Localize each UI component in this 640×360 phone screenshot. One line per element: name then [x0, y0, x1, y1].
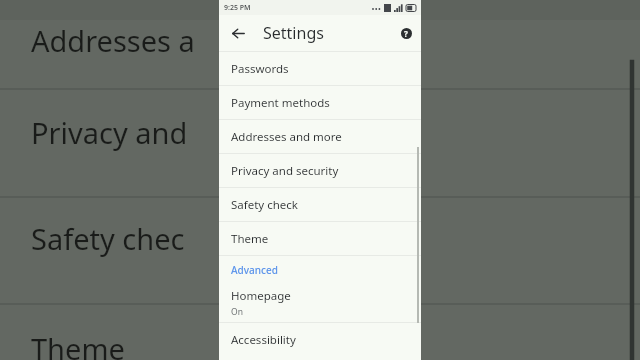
staticText: Payment methods: [231, 95, 330, 111]
staticText: On: [231, 306, 243, 318]
button[interactable]: Privacy and security: [219, 154, 421, 187]
button[interactable]: Accessibility: [219, 323, 421, 356]
button[interactable]: Help and feedback: [396, 23, 416, 43]
button[interactable]: Payment methods: [219, 86, 421, 119]
staticText: Privacy and: [31, 113, 188, 152]
staticText: Homepage: [231, 288, 291, 304]
staticText: 9:25 PM: [224, 3, 251, 13]
button[interactable]: Passwords: [219, 52, 421, 85]
staticText: Privacy and security: [231, 163, 339, 179]
staticText: Passwords: [231, 61, 289, 77]
button[interactable]: Theme: [219, 222, 421, 255]
staticText: Safety chec: [31, 219, 185, 258]
staticText: Advanced: [231, 263, 278, 277]
button[interactable]: Navigate up: [227, 22, 249, 44]
staticText: Theme: [231, 231, 269, 247]
staticText: ?: [404, 28, 408, 39]
staticText: Safety check: [231, 197, 298, 213]
staticText: Addresses a: [31, 21, 195, 60]
staticText: Settings: [263, 22, 324, 44]
button[interactable]: Safety check: [219, 188, 421, 221]
button[interactable]: Homepage: [219, 283, 421, 322]
staticText: Accessibility: [231, 332, 296, 348]
staticText: Addresses and more: [231, 129, 342, 145]
staticText: Theme: [31, 329, 125, 360]
button[interactable]: Addresses and more: [219, 120, 421, 153]
